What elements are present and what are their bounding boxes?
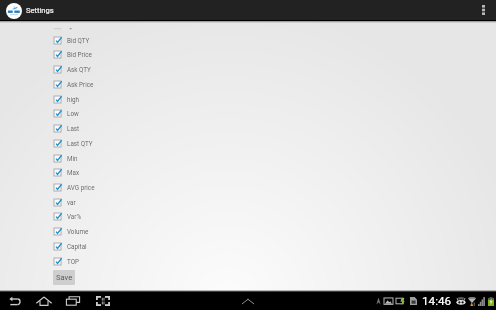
button[interactable]: Min <box>54 151 134 166</box>
button[interactable]: Last QTY <box>54 136 134 151</box>
staticText: TOP <box>67 258 79 265</box>
staticText: high <box>67 96 80 103</box>
staticText: Var% <box>67 213 82 220</box>
staticText: 14:46 <box>422 294 452 308</box>
button[interactable]: TOP <box>54 254 134 269</box>
staticText: var <box>67 199 76 206</box>
button[interactable]: Bid QTY <box>54 33 134 48</box>
staticText: Min <box>67 155 78 162</box>
staticText: Ask Price <box>67 81 94 88</box>
button[interactable]: More options <box>472 0 496 20</box>
button[interactable]: Ask QTY <box>54 62 134 77</box>
staticText: Low <box>67 110 79 117</box>
staticText: Volume <box>67 228 89 235</box>
staticText: Capital <box>67 243 87 250</box>
button[interactable]: Capital <box>54 239 134 254</box>
staticText: Bid QTY <box>67 37 90 44</box>
button[interactable]: Recent apps <box>64 292 82 310</box>
button[interactable]: Ask Price <box>54 77 134 92</box>
button[interactable]: Last <box>54 121 134 136</box>
staticText: Bid Price <box>67 51 92 58</box>
staticText: AVG price <box>67 184 95 191</box>
button[interactable]: Max <box>54 165 134 180</box>
staticText: Last QTY <box>67 140 93 147</box>
staticText: Last <box>67 125 80 132</box>
button[interactable]: AVG price <box>54 180 134 195</box>
button[interactable]: Show navigation <box>239 292 257 310</box>
button[interactable]: Screenshot <box>94 292 112 310</box>
button[interactable]: Low <box>54 106 134 121</box>
button[interactable]: Back <box>6 292 24 310</box>
staticText: Settings <box>26 6 54 15</box>
button[interactable]: var <box>54 195 134 210</box>
button[interactable]: Home <box>35 292 53 310</box>
staticText: Ask QTY <box>67 66 91 73</box>
button[interactable]: high <box>54 92 134 107</box>
button[interactable]: Var% <box>54 209 134 224</box>
button[interactable]: Volume <box>54 224 134 239</box>
button[interactable]: Save <box>53 270 75 285</box>
button[interactable]: Bid Price <box>54 47 134 62</box>
staticText: Max <box>67 169 80 176</box>
staticText: Save <box>56 273 73 282</box>
